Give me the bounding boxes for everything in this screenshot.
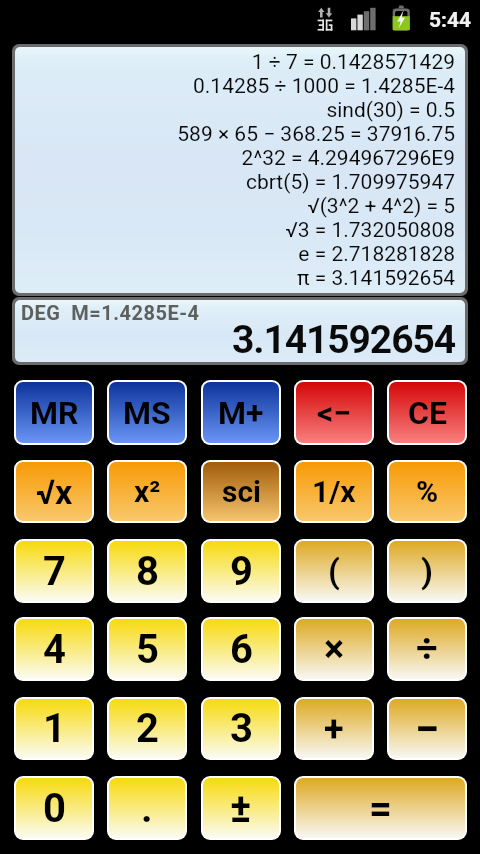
button[interactable]: ): [389, 541, 465, 601]
staticText: 0: [43, 785, 66, 832]
staticText: 1/x: [312, 474, 356, 509]
button[interactable]: MR: [16, 382, 92, 443]
staticText: ): [421, 551, 433, 591]
button[interactable]: MS: [109, 382, 185, 443]
staticText: ×: [324, 627, 345, 672]
staticText: √(3^2 + 4^2) = 5: [307, 194, 455, 218]
button[interactable]: √x: [16, 462, 92, 521]
button[interactable]: 9: [203, 541, 279, 601]
button[interactable]: x²: [109, 462, 185, 521]
staticText: 1: [43, 705, 66, 752]
staticText: 2^32 = 4.294967296E9: [241, 146, 455, 170]
staticText: √x: [36, 472, 73, 512]
staticText: √3 = 1.732050808: [285, 218, 455, 242]
staticText: ±: [230, 785, 252, 832]
staticText: 589 × 65 − 368.25 = 37916.75: [177, 122, 455, 146]
staticText: =: [369, 785, 392, 832]
button[interactable]: 1 ÷ 7 = 0.1428571429: [15, 47, 465, 293]
button[interactable]: 1/x: [296, 462, 372, 521]
button[interactable]: +: [296, 699, 372, 758]
staticText: <−: [317, 394, 352, 432]
button[interactable]: 7: [16, 541, 92, 601]
button[interactable]: (: [296, 541, 372, 601]
staticText: 0.14285 ÷ 1000 = 1.4285E-4: [192, 74, 455, 98]
staticText: 9: [230, 548, 253, 595]
button[interactable]: 6: [203, 619, 279, 679]
staticText: 7: [43, 548, 66, 595]
staticText: .: [141, 785, 153, 832]
staticText: x²: [134, 474, 161, 509]
button[interactable]: ×: [296, 619, 372, 679]
staticText: 3.141592654: [232, 317, 455, 362]
button[interactable]: <−: [296, 382, 372, 443]
staticText: CE: [408, 394, 447, 432]
staticText: 1 ÷ 7 = 0.1428571429: [251, 50, 455, 74]
staticText: ÷: [416, 627, 438, 672]
staticText: %: [416, 474, 439, 509]
button[interactable]: 8: [109, 541, 185, 601]
button[interactable]: 5: [109, 619, 185, 679]
button[interactable]: 4: [16, 619, 92, 679]
staticText: M+: [218, 394, 264, 432]
staticText: 6: [230, 626, 253, 673]
staticText: 8: [136, 548, 159, 595]
button[interactable]: sci: [203, 462, 279, 521]
staticText: (: [328, 551, 340, 591]
button[interactable]: 2: [109, 699, 185, 758]
staticText: 5: [136, 626, 159, 673]
staticText: MR: [30, 394, 79, 432]
button[interactable]: ±: [203, 778, 279, 838]
staticText: 4: [43, 626, 66, 673]
button[interactable]: .: [109, 778, 185, 838]
button[interactable]: ÷: [389, 619, 465, 679]
button[interactable]: =: [296, 778, 465, 838]
staticText: MS: [123, 394, 171, 432]
staticText: sci: [222, 474, 261, 509]
button[interactable]: %: [389, 462, 465, 521]
staticText: +: [324, 708, 344, 750]
staticText: 5:44: [429, 8, 472, 33]
staticText: π = 3.141592654: [296, 266, 455, 290]
staticText: 3: [230, 705, 253, 752]
staticText: DEG M=1.4285E-4: [21, 301, 200, 324]
button[interactable]: M+: [203, 382, 279, 443]
button[interactable]: 1: [16, 699, 92, 758]
button[interactable]: DEG M=1.4285E-4: [15, 300, 465, 362]
button[interactable]: 0: [16, 778, 92, 838]
staticText: 2: [136, 705, 159, 752]
button[interactable]: −: [389, 699, 465, 758]
staticText: sind(30) = 0.5: [326, 98, 455, 122]
staticText: −: [415, 703, 440, 755]
staticText: cbrt(5) = 1.709975947: [245, 170, 455, 194]
button[interactable]: 3: [203, 699, 279, 758]
button[interactable]: CE: [389, 382, 465, 443]
staticText: e = 2.718281828: [298, 242, 455, 266]
